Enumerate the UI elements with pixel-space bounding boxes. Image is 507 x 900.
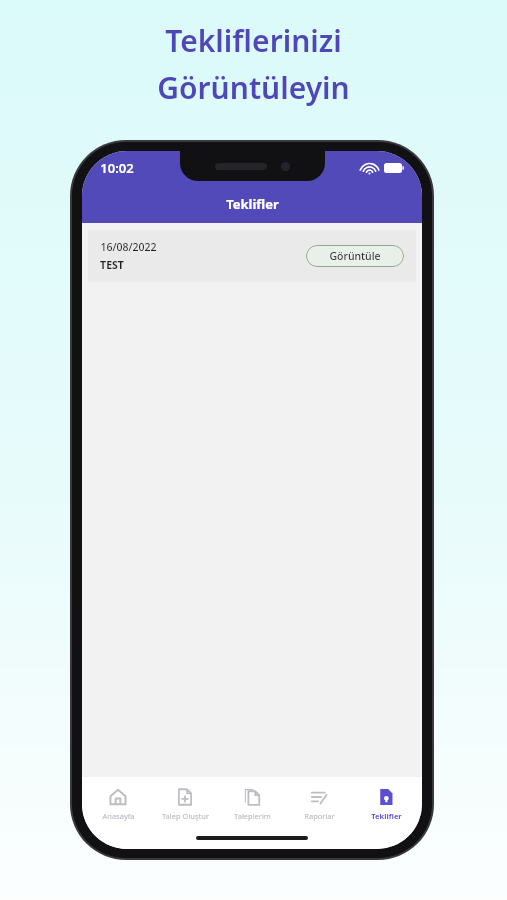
other: Taleplerim xyxy=(243,788,261,806)
staticText: Tekliflerinizi xyxy=(165,20,342,61)
staticText: Görüntüleyin xyxy=(157,67,350,108)
button[interactable]: Raporlar xyxy=(288,786,350,823)
staticText: Taleplerim xyxy=(234,811,271,821)
staticText: Talep Oluştur xyxy=(162,811,209,821)
staticText: Teklifler xyxy=(226,195,279,213)
button[interactable]: Teklifler xyxy=(355,786,417,823)
other: Teklifler xyxy=(377,788,395,806)
button[interactable]: Anasayfa xyxy=(87,786,149,823)
button[interactable]: Talep Oluştur xyxy=(154,786,216,823)
staticText: Teklifler xyxy=(371,811,402,821)
staticText: Raporlar xyxy=(304,811,335,821)
button[interactable]: 16/08/2022 xyxy=(88,230,416,282)
other: Talep Oluştur xyxy=(176,788,194,806)
button[interactable]: Taleplerim xyxy=(221,786,283,823)
staticText: 16/08/2022 xyxy=(100,240,157,254)
staticText: Görüntüle xyxy=(329,249,381,263)
staticText: Anasayfa xyxy=(102,811,135,821)
staticText: 10:02 xyxy=(100,159,134,177)
button[interactable]: Görüntüle xyxy=(306,245,404,267)
other: Raporlar xyxy=(310,788,328,806)
staticText: TEST xyxy=(100,258,124,272)
other: Anasayfa xyxy=(109,788,127,806)
